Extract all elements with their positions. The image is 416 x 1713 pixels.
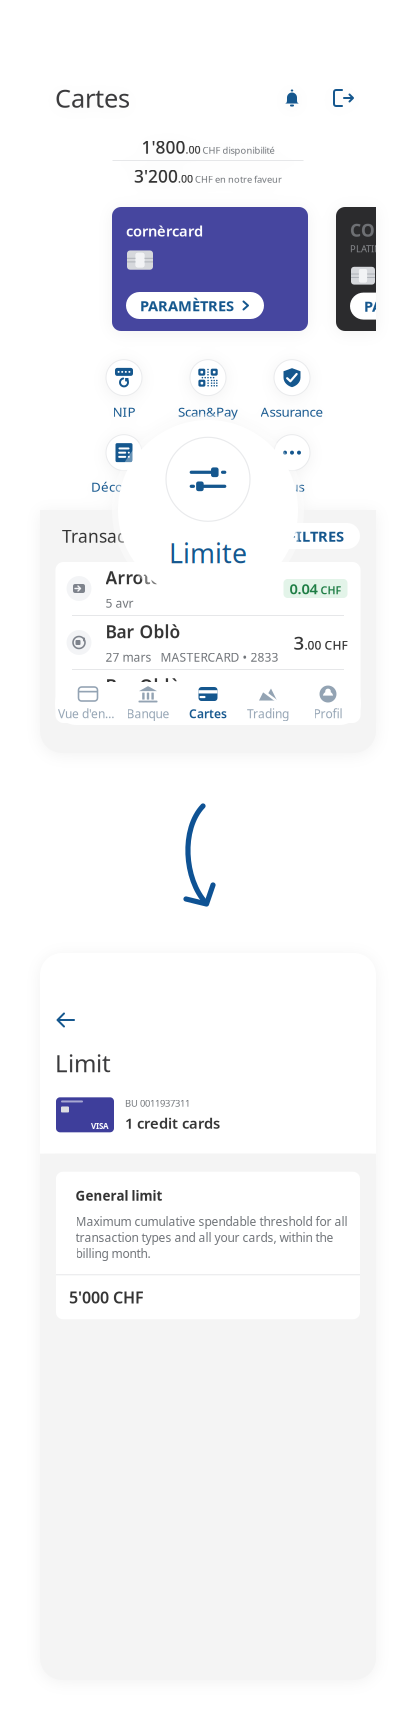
staticText: VISA — [91, 1120, 109, 1131]
staticText: Assurance — [260, 403, 323, 420]
staticText: BU 0011937311 — [125, 1097, 190, 1109]
button[interactable]: Arrotondamento — [55, 562, 360, 615]
staticText: 1'800 — [141, 135, 185, 158]
button[interactable]: Assurance — [250, 359, 334, 421]
button[interactable]: Plus — [250, 434, 334, 496]
staticText: Limite — [189, 478, 227, 495]
staticText: Profil — [313, 705, 342, 721]
button[interactable]: Log out — [332, 88, 354, 108]
staticText: PLATINUM — [350, 242, 396, 255]
button[interactable]: Notifications — [282, 88, 302, 108]
staticText: .00 CHF — [304, 637, 347, 653]
staticText: General limit — [75, 1187, 162, 1204]
staticText: cornèrcard — [126, 221, 203, 240]
button[interactable]: Bar Oblò — [55, 670, 360, 723]
staticText: .00 — [185, 142, 200, 157]
staticText: CHF — [193, 173, 215, 185]
staticText: .00 CHF — [304, 691, 347, 707]
button[interactable]: Découvert — [82, 434, 166, 496]
button[interactable]: Scan&Pay — [166, 359, 250, 421]
button[interactable]: Cartes — [178, 684, 238, 722]
button[interactable]: PARAMÈTRES — [126, 292, 264, 319]
staticText: CORNÈR — [350, 218, 416, 241]
staticText: Limit — [55, 1047, 111, 1079]
staticText: Cartes — [55, 81, 130, 115]
staticText: PARAMÈTRES — [140, 296, 234, 315]
staticText: .00 — [178, 171, 193, 186]
button[interactable]: Profil — [298, 684, 358, 722]
staticText: FILTRES — [288, 526, 344, 546]
staticText: 3'200 — [134, 164, 178, 187]
staticText: en notre faveur — [215, 173, 282, 185]
staticText: 5 avr — [105, 595, 133, 611]
staticText: CHF — [317, 583, 341, 597]
staticText: Limite — [169, 535, 247, 571]
staticText: Bar Oblò — [105, 674, 180, 697]
staticText: Scan&Pay — [178, 403, 238, 420]
button[interactable]: NIP — [82, 359, 166, 421]
staticText: Vue d'ense… — [58, 705, 118, 721]
staticText: 27 mars MASTERCARD • 2833 — [105, 649, 278, 665]
staticText: Plus — [279, 478, 304, 495]
staticText: CHF — [200, 144, 222, 156]
staticText: 1 credit cards — [125, 1113, 220, 1133]
staticText: Transactions — [62, 524, 164, 547]
staticText: disponibilité — [222, 144, 274, 156]
button[interactable]: Bar Oblò — [55, 616, 360, 669]
staticText: Cartes — [189, 705, 227, 721]
staticText: Arrotondamento — [105, 566, 249, 589]
button[interactable]: PARAMÈTRES — [350, 293, 416, 320]
staticText: Banque — [126, 705, 169, 721]
staticText: 3 — [293, 630, 304, 655]
staticText: 27 mars MASTERCARD • 2833 — [105, 703, 278, 719]
button[interactable]: Banque — [118, 684, 178, 722]
button[interactable]: Limite — [166, 434, 250, 496]
staticText: Découvert — [91, 478, 157, 495]
staticText: NIP — [112, 403, 135, 420]
staticText: Trading — [247, 705, 289, 721]
button[interactable]: Trading — [238, 684, 298, 722]
staticText: 0.04 — [289, 579, 317, 598]
button[interactable]: FILTRES — [272, 523, 360, 549]
staticText: Bar Oblò — [105, 620, 180, 643]
staticText: 5'000 CHF — [69, 1287, 144, 1308]
staticText: PARAMÈTRES — [364, 296, 416, 316]
button[interactable]: Vue d'ense… — [58, 684, 118, 722]
button[interactable]: Back — [56, 1012, 75, 1028]
staticText: Maximum cumulative spendable threshold f… — [75, 1213, 347, 1261]
